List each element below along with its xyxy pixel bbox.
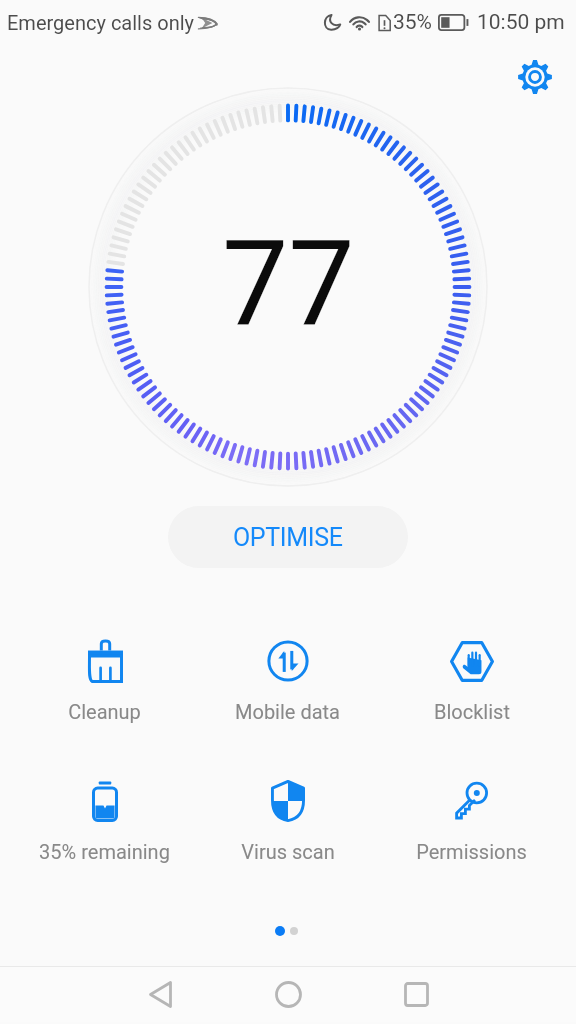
button[interactable]: Permissions (380, 762, 563, 863)
staticText: Blocklist (434, 700, 510, 723)
staticText: 35% remaining (39, 840, 170, 863)
button[interactable]: Mobile data (196, 622, 379, 723)
button[interactable]: Cleanup (13, 622, 196, 723)
staticText: Emergency calls only (7, 11, 195, 34)
staticText: 77 (222, 216, 355, 354)
button[interactable]: Blocklist (380, 622, 563, 723)
staticText: Cleanup (68, 700, 141, 723)
staticText: OPTIMISE (233, 523, 343, 552)
button[interactable]: 35% remaining (13, 762, 196, 863)
staticText: 10:50 pm (477, 10, 565, 35)
button[interactable]: Home (260, 967, 316, 1022)
button[interactable]: Recents (388, 967, 444, 1022)
button[interactable]: OPTIMISE (168, 506, 408, 568)
staticText: 35% (393, 10, 432, 35)
button[interactable]: Virus scan (196, 762, 379, 863)
staticText: Mobile data (235, 700, 340, 723)
button[interactable]: Settings (513, 55, 557, 99)
staticText: Permissions (416, 840, 527, 863)
staticText: Virus scan (241, 840, 335, 863)
button[interactable]: Back (132, 967, 188, 1022)
